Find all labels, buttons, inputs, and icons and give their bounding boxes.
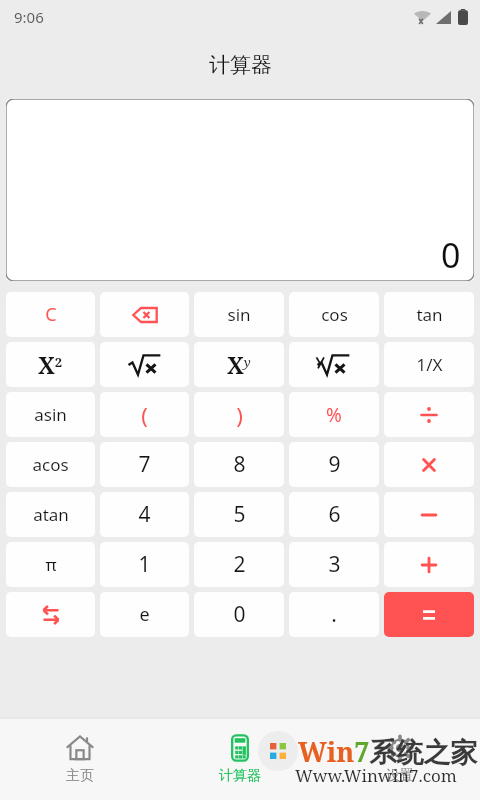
button[interactable]: Backspace [100, 292, 189, 337]
staticText: 5 [233, 500, 246, 529]
staticText: cos [321, 303, 348, 326]
button[interactable]: Equals [384, 592, 474, 637]
button[interactable]: Divide [384, 392, 474, 437]
button[interactable]: asin [6, 392, 95, 437]
staticText: 计算器 [219, 767, 261, 785]
button[interactable]: 6 [289, 492, 379, 537]
staticText: tan [416, 303, 443, 326]
button[interactable]: Swap [6, 592, 95, 637]
button[interactable]: Y-th root of X [289, 342, 379, 387]
button[interactable]: acos [6, 442, 95, 487]
staticText: ( [141, 400, 148, 430]
staticText: 0 [441, 232, 461, 278]
button[interactable]: X to the power of Y [194, 342, 284, 387]
button[interactable]: tan [384, 292, 474, 337]
staticText: acos [32, 453, 69, 476]
staticText: 8 [233, 450, 246, 479]
button[interactable]: 2 [194, 542, 284, 587]
button[interactable]: 设置 [320, 718, 480, 800]
button[interactable]: ) [194, 392, 284, 437]
button[interactable]: Minus [384, 492, 474, 537]
button[interactable]: Multiply [384, 442, 474, 487]
button[interactable]: π [6, 542, 95, 587]
button[interactable]: sin [194, 292, 284, 337]
staticText: 9:06 [14, 7, 44, 27]
button[interactable]: Plus [384, 542, 474, 587]
staticText: Www.Winwin7.com [295, 764, 457, 787]
staticText: asin [34, 403, 67, 426]
staticText: Win7系统之家 [298, 733, 478, 770]
button[interactable]: 8 [194, 442, 284, 487]
button[interactable]: 9 [289, 442, 379, 487]
button[interactable]: e [100, 592, 189, 637]
staticText: Xy [227, 349, 251, 380]
staticText: 4 [138, 500, 151, 529]
button[interactable]: 1/X [384, 342, 474, 387]
staticText: 1/X [416, 353, 443, 376]
button[interactable]: 3 [289, 542, 379, 587]
button[interactable]: 7 [100, 442, 189, 487]
staticText: 3 [328, 550, 341, 579]
staticText: X2 [38, 349, 63, 380]
staticText: 计算器 [209, 52, 272, 78]
staticText: 9 [328, 450, 341, 479]
button[interactable]: % [289, 392, 379, 437]
button[interactable]: atan [6, 492, 95, 537]
button[interactable]: ( [100, 392, 189, 437]
staticText: 设置 [386, 767, 414, 785]
staticText: atan [33, 503, 69, 526]
button[interactable]: X squared [6, 342, 95, 387]
button[interactable]: 5 [194, 492, 284, 537]
staticText: sin [227, 303, 251, 326]
button[interactable]: 1 [100, 542, 189, 587]
staticText: 0 [233, 600, 246, 629]
staticText: % [326, 402, 342, 428]
staticText: 7 [138, 450, 151, 479]
button[interactable]: cos [289, 292, 379, 337]
staticText: 6 [328, 500, 341, 529]
button[interactable]: . [289, 592, 379, 637]
staticText: . [331, 600, 337, 629]
button[interactable]: C [6, 292, 95, 337]
button[interactable]: 0 [194, 592, 284, 637]
staticText: 主页 [66, 767, 94, 785]
staticText: C [45, 302, 57, 327]
button[interactable]: 计算器 [160, 718, 320, 800]
staticText: e [139, 602, 150, 627]
staticText: 1 [138, 550, 151, 579]
button[interactable]: 4 [100, 492, 189, 537]
button[interactable]: 主页 [0, 718, 160, 800]
staticText: ) [236, 400, 243, 430]
staticText: π [45, 553, 57, 576]
staticText: 2 [233, 550, 246, 579]
button[interactable]: Square root of X [100, 342, 189, 387]
